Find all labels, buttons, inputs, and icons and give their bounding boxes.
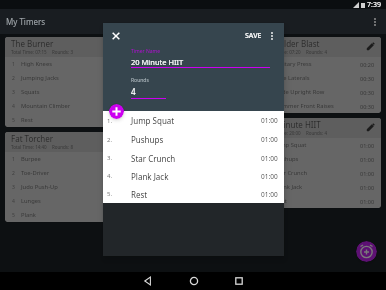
button[interactable]: 3: [139, 85, 248, 99]
button[interactable]: 20 Minute HIIT: [259, 118, 381, 208]
staticText: 01:00: [261, 116, 278, 125]
button[interactable]: More options: [368, 15, 382, 29]
staticText: Total Time: 07:20: [265, 49, 301, 55]
button[interactable]: 4: [12, 194, 121, 208]
staticText: Rounds: 3: [52, 49, 73, 55]
staticText: 2: [12, 75, 21, 82]
button[interactable]: 4: [266, 180, 375, 194]
button[interactable]: Close: [109, 29, 123, 43]
staticText: Crunch: [148, 155, 233, 163]
button[interactable]: 2.: [107, 130, 278, 149]
button[interactable]: 2: [266, 71, 375, 85]
staticText: Bicycle: [148, 197, 233, 205]
staticText: 5: [12, 117, 21, 124]
button[interactable]: 4: [266, 99, 375, 113]
staticText: Total Time: 20:00: [265, 130, 301, 136]
button[interactable]: 5: [266, 194, 375, 208]
button[interactable]: 3: [266, 166, 375, 180]
button[interactable]: 4: [139, 99, 248, 113]
staticText: 1: [12, 61, 21, 68]
button[interactable]: 5: [12, 208, 121, 222]
button[interactable]: 3: [12, 180, 121, 194]
button[interactable]: 5.: [107, 185, 278, 203]
staticText: 01:00: [261, 135, 278, 144]
button[interactable]: 4: [12, 99, 121, 113]
staticText: 3: [266, 170, 275, 177]
button[interactable]: 3: [266, 85, 375, 99]
staticText: Wall Sit: [148, 74, 233, 82]
staticText: 1: [139, 61, 148, 68]
staticText: 5: [266, 198, 275, 205]
staticText: 1: [266, 61, 275, 68]
button[interactable]: 4: [139, 194, 248, 208]
button[interactable]: 2: [12, 166, 121, 180]
staticText: Squat Jump: [148, 60, 233, 68]
staticText: Pushups: [131, 134, 261, 145]
staticText: 01:00: [360, 156, 375, 163]
button[interactable]: 3: [139, 180, 248, 194]
button[interactable]: SAVE: [242, 28, 265, 44]
button[interactable]: 4.: [107, 167, 278, 185]
staticText: 4.: [107, 172, 131, 180]
staticText: 01:00: [360, 142, 375, 149]
staticText: Star Crunch: [131, 153, 261, 164]
staticText: Plank Jack: [275, 183, 360, 191]
button[interactable]: 1: [12, 57, 121, 71]
staticText: 00:30: [360, 89, 375, 96]
button[interactable]: Edit timer: [111, 136, 122, 147]
button[interactable]: The Burner: [5, 37, 127, 127]
button[interactable]: 1: [139, 57, 248, 71]
staticText: Rest: [131, 189, 261, 200]
staticText: 01:00: [261, 172, 278, 181]
button[interactable]: 2: [266, 152, 375, 166]
staticText: 2: [139, 170, 148, 177]
button[interactable]: 3: [12, 85, 121, 99]
staticText: 4: [131, 86, 136, 97]
button[interactable]: 1: [266, 138, 375, 152]
staticText: Rounds: 4: [306, 49, 327, 55]
button[interactable]: 3.: [107, 149, 278, 167]
button[interactable]: Leg Day: [132, 37, 254, 127]
button[interactable]: 1.: [107, 111, 278, 130]
staticText: Rest: [21, 116, 106, 124]
button[interactable]: Add timer: [356, 241, 377, 262]
staticText: 5: [139, 117, 148, 124]
button[interactable]: 1: [12, 152, 121, 166]
button[interactable]: 2: [139, 71, 248, 85]
button[interactable]: 5: [12, 113, 121, 127]
button[interactable]: 5: [139, 113, 248, 127]
button[interactable]: More options: [265, 29, 279, 43]
button[interactable]: 1: [139, 152, 248, 166]
button[interactable]: Edit timer: [365, 122, 376, 133]
button[interactable]: Fat Torcher: [5, 132, 127, 222]
staticText: Pushups: [275, 155, 360, 163]
button[interactable]: Add exercise: [109, 104, 124, 119]
staticText: 01:00: [261, 190, 278, 199]
staticText: Plank: [21, 211, 106, 219]
staticText: Fat Torcher: [11, 133, 111, 144]
button[interactable]: Back: [140, 273, 156, 289]
button[interactable]: Shoulder Blast: [259, 37, 381, 113]
button[interactable]: 1: [266, 57, 375, 71]
button[interactable]: Recents: [231, 273, 247, 289]
staticText: Rest: [275, 197, 360, 205]
button[interactable]: Edit timer: [365, 41, 376, 52]
staticText: Rest: [148, 116, 233, 124]
staticText: Total Time: 14:40: [11, 144, 47, 150]
staticText: 20 Minute HIIT: [265, 119, 365, 130]
button[interactable]: 2: [12, 71, 121, 85]
button[interactable]: Core Killer: [132, 132, 254, 222]
button[interactable]: 2: [139, 166, 248, 180]
staticText: 1: [139, 156, 148, 163]
button[interactable]: Home: [186, 273, 202, 289]
